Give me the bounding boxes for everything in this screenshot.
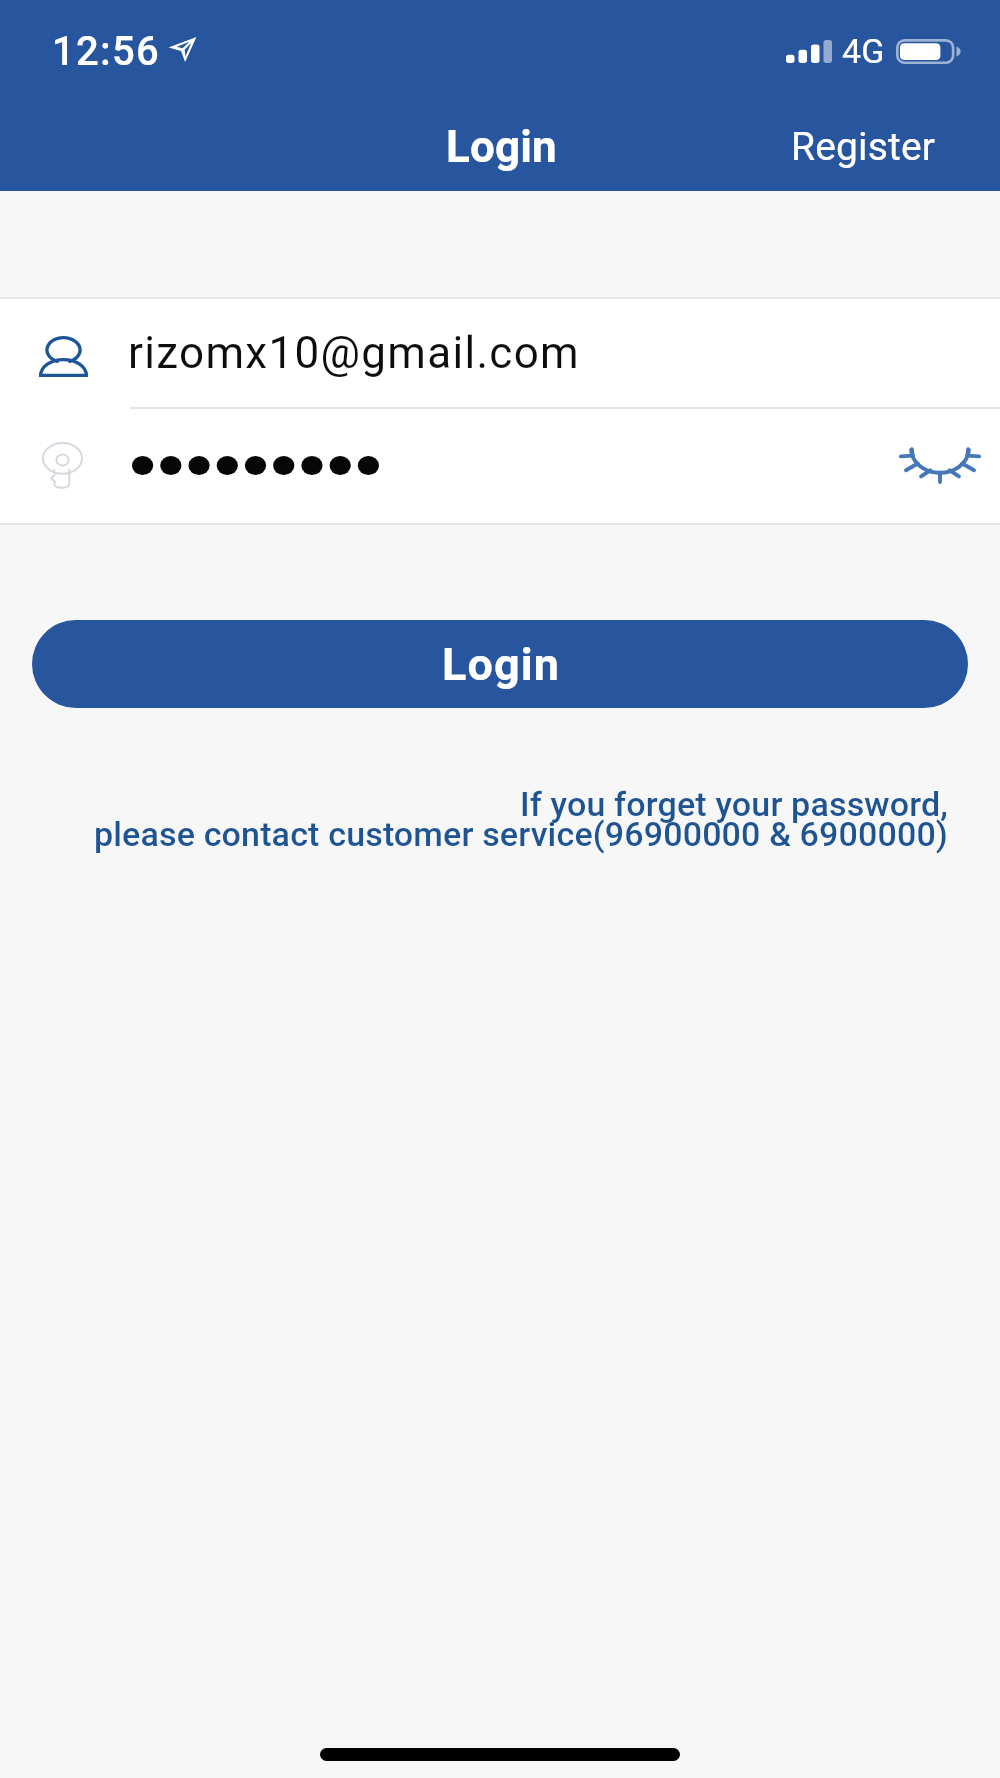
button[interactable]: Register — [767, 110, 1000, 184]
button[interactable]: Login — [32, 620, 968, 708]
button[interactable]: Login — [422, 107, 581, 187]
staticText: Login — [446, 121, 557, 173]
button[interactable]: Show password — [0, 409, 1000, 523]
staticText: Register — [791, 124, 936, 170]
staticText: Login — [442, 638, 561, 691]
staticText: rizomx10@gmail.com — [128, 327, 580, 379]
button[interactable]: Show password — [880, 431, 1000, 501]
button[interactable]: If you forget your password, please cont… — [0, 784, 1000, 855]
staticText: 4G — [842, 31, 885, 71]
staticText: 12:56 — [52, 28, 161, 75]
button[interactable]: rizomx10@gmail.com — [0, 299, 1000, 407]
staticText: If you forget your password, please cont… — [30, 784, 948, 855]
